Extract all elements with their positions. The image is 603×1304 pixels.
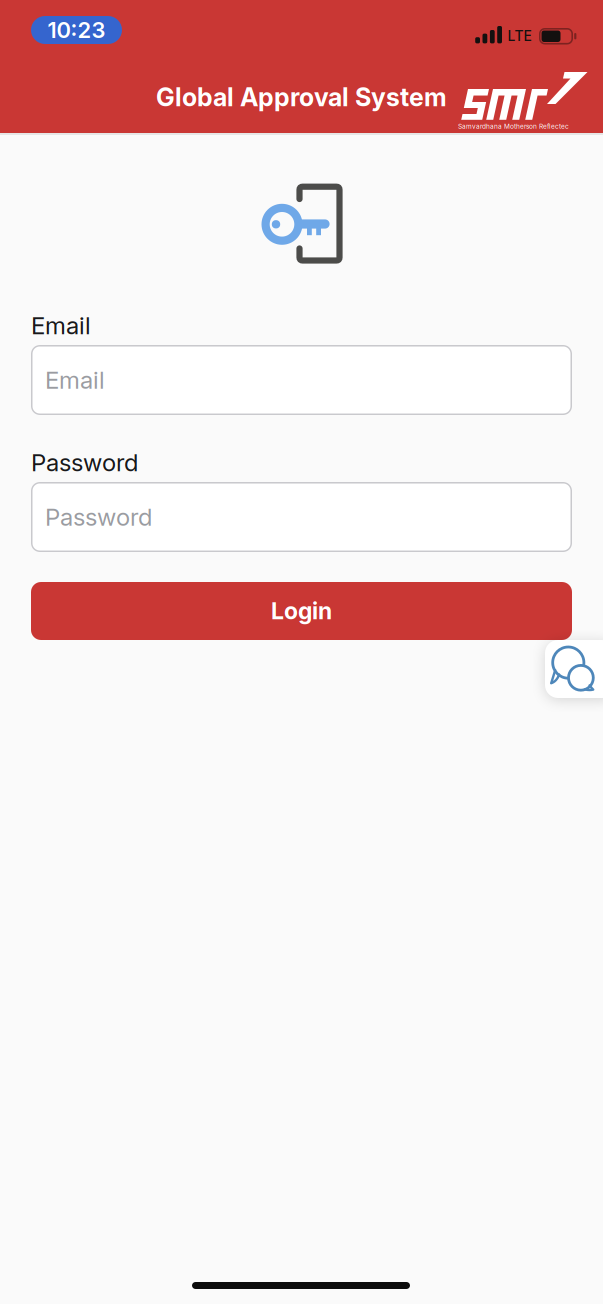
staticText: Global Approval System	[156, 82, 447, 112]
staticText: Login	[271, 597, 332, 625]
staticText: Samvardhana Motherson Reflectec	[458, 123, 569, 130]
staticText: 10:23	[47, 17, 105, 43]
button[interactable]: Chat	[545, 640, 603, 698]
staticText: Email	[45, 365, 105, 394]
staticText: Password	[45, 502, 152, 531]
button[interactable]: Email	[31, 345, 572, 415]
staticText: LTE	[507, 27, 531, 44]
button[interactable]: Login	[31, 582, 572, 640]
staticText: Email	[31, 311, 91, 340]
staticText: Password	[31, 448, 138, 477]
button[interactable]: Password	[31, 482, 572, 552]
